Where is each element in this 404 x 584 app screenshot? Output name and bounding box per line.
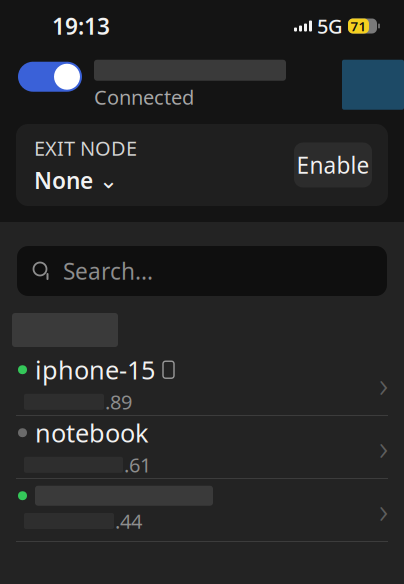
button[interactable]: .44 — [0, 479, 404, 542]
button[interactable]: VPN connection toggle — [18, 52, 82, 92]
button[interactable]: Search — [17, 246, 387, 296]
button[interactable]: notebook — [0, 416, 404, 479]
staticText: › — [379, 487, 388, 533]
staticText: EXIT NODE — [34, 135, 137, 161]
staticText: Search... — [63, 256, 153, 286]
button[interactable]: None — [34, 165, 118, 195]
staticText: 5G — [317, 13, 343, 39]
staticText: ⌄ — [99, 167, 118, 193]
staticText: None — [34, 165, 93, 195]
staticText: .61 — [124, 451, 151, 478]
staticText: › — [379, 424, 388, 470]
staticText: › — [379, 361, 388, 407]
button[interactable]: Enable — [294, 142, 372, 187]
staticText: iphone-15 — [35, 353, 155, 386]
staticText: 71 — [350, 17, 366, 35]
staticText: .44 — [115, 508, 142, 534]
staticText: Enable — [296, 150, 369, 180]
button[interactable]: iphone-15 — [0, 353, 404, 416]
staticText: Connected — [94, 84, 194, 110]
button[interactable]: Account — [342, 52, 404, 110]
staticText: notebook — [35, 416, 149, 449]
staticText: .89 — [105, 388, 132, 415]
staticText: 19:13 — [52, 11, 110, 41]
